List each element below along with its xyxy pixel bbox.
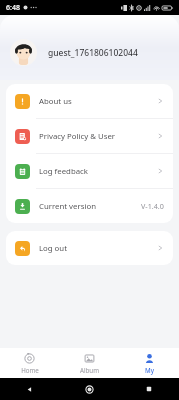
staticText: About us <box>39 96 157 107</box>
button[interactable]: Home <box>59 378 119 400</box>
staticText: Log out <box>39 243 157 254</box>
staticText: My <box>145 366 154 374</box>
button[interactable]: Back <box>0 378 59 400</box>
staticText: Album <box>80 366 99 374</box>
staticText: guest_1761806102044 <box>48 47 138 59</box>
button[interactable]: Recent apps <box>119 378 179 400</box>
button[interactable]: Log out <box>6 231 173 265</box>
button[interactable]: Album <box>59 348 119 378</box>
button[interactable]: Privacy Policy & User Agreement <box>6 119 173 153</box>
button[interactable]: My <box>119 348 179 378</box>
staticText: Current version <box>39 201 141 212</box>
button[interactable]: Profile avatar <box>10 39 37 66</box>
staticText: Privacy Policy & User Agreement <box>39 131 157 142</box>
staticText: Home <box>21 366 39 374</box>
button[interactable]: About us <box>6 84 173 118</box>
staticText: V-1.4.0 <box>141 201 164 211</box>
button[interactable]: Current version <box>6 189 173 223</box>
staticText: 6:48 <box>6 3 20 13</box>
button[interactable]: Home <box>0 348 59 378</box>
button[interactable]: Log feedback <box>6 154 173 188</box>
staticText: Log feedback <box>39 166 157 177</box>
